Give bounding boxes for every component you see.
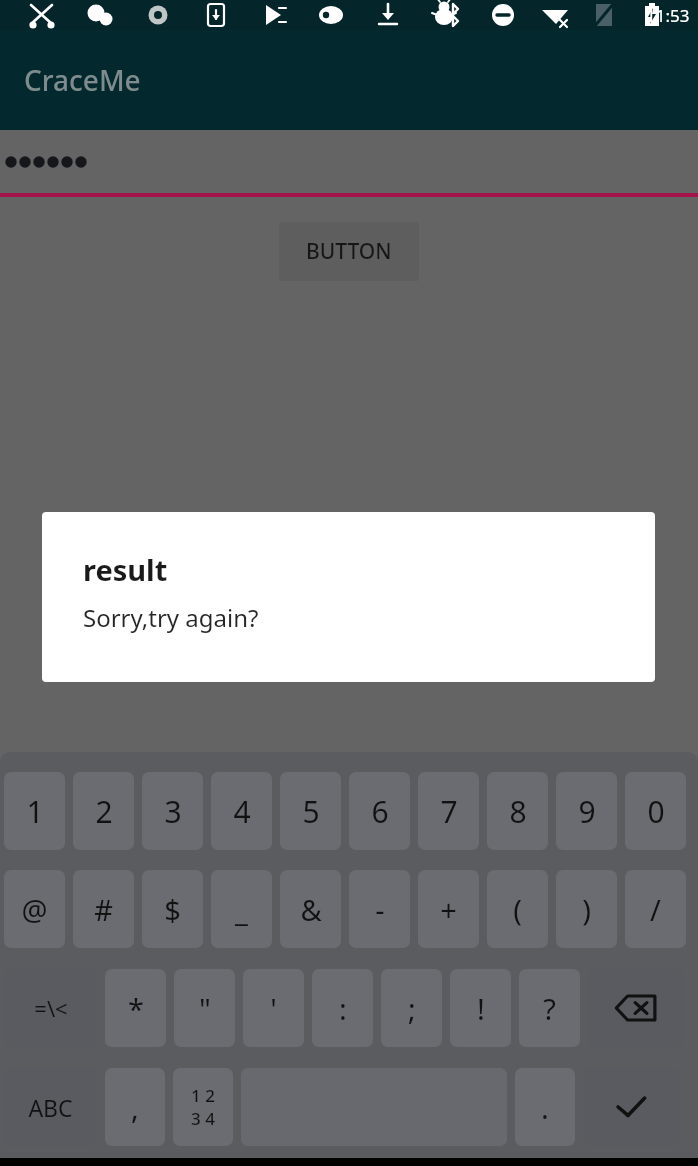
staticText: BUTTON [306,237,392,266]
button[interactable]: =\< [4,969,97,1047]
staticText: 3 [164,791,182,832]
staticText: 5 [302,791,320,832]
button[interactable]: : [312,969,373,1047]
staticText: ( [513,890,522,929]
staticText: Sorry,try again? [83,601,259,634]
button[interactable]: 9 [556,772,617,850]
staticText: 1 [26,791,44,832]
button[interactable]: 4 [211,772,272,850]
button[interactable]: 1 2 [173,1068,233,1146]
button[interactable]: & [280,870,341,948]
staticText: ' [270,989,277,1028]
button[interactable]: ; [381,969,442,1047]
button[interactable]: @ [4,870,65,948]
staticText: , [131,1088,139,1127]
button[interactable]: 0 [625,772,686,850]
button[interactable]: Backspace [588,969,684,1047]
button[interactable]: . [515,1068,575,1146]
button[interactable]: $ [142,870,203,948]
button[interactable]: + [418,870,479,948]
button[interactable]: 1 [4,772,65,850]
staticText: 9 [578,791,596,832]
staticText: ? [543,989,556,1028]
button[interactable]: * [105,969,166,1047]
button[interactable] [0,130,698,193]
button[interactable]: " [174,969,235,1047]
button[interactable]: ' [243,969,304,1047]
button[interactable]: # [73,870,134,948]
staticText: # [94,890,113,929]
staticText: 11:53 [646,4,690,27]
button[interactable]: 2 [73,772,134,850]
staticText: 4 [233,791,251,832]
staticText: : [339,989,347,1028]
button[interactable]: _ [211,870,272,948]
staticText: $ [164,890,181,929]
button[interactable]: - [349,870,410,948]
button[interactable]: BUTTON [279,222,419,281]
staticText: / [650,890,661,929]
staticText: * [128,989,144,1028]
button[interactable]: ABC [4,1068,97,1146]
staticText: - [375,890,385,929]
staticText: . [541,1088,549,1127]
button[interactable]: ? [519,969,580,1047]
staticText: ABC [28,1092,73,1123]
staticText: ! [477,989,485,1028]
staticText: 0 [647,791,665,832]
button[interactable]: / [625,870,686,948]
button[interactable]: 6 [349,772,410,850]
button[interactable]: ) [556,870,617,948]
button[interactable]: 5 [280,772,341,850]
staticText: result [83,550,168,589]
staticText: 7 [440,791,458,832]
staticText: ; [408,989,416,1028]
staticText: CraceMe [24,61,141,99]
staticText: 1 2 [191,1084,215,1107]
staticText: 6 [371,791,389,832]
button[interactable]: ( [487,870,548,948]
staticText: @ [21,890,48,929]
staticText: & [300,890,322,929]
staticText: ) [582,890,591,929]
staticText: =\< [34,993,68,1023]
button[interactable]: ! [450,969,511,1047]
button[interactable]: Enter [583,1068,679,1146]
button[interactable]: 8 [487,772,548,850]
staticText: 8 [509,791,527,832]
button[interactable]: , [105,1068,165,1146]
staticText: _ [235,890,248,929]
button[interactable]: 7 [418,772,479,850]
staticText: " [199,989,211,1028]
staticText: 3 4 [191,1107,215,1130]
button[interactable]: 3 [142,772,203,850]
staticText: + [440,890,457,929]
staticText: 2 [95,791,113,832]
